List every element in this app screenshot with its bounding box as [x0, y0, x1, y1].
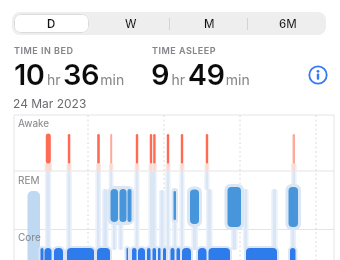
button[interactable]: W [91, 12, 170, 35]
staticText: TIME ASLEEP [152, 45, 217, 56]
button[interactable]: M [170, 12, 249, 35]
button[interactable]: 6M [249, 12, 326, 35]
staticText: 6M [279, 17, 297, 31]
button[interactable]: D [12, 12, 91, 35]
staticText: D [47, 17, 56, 31]
staticText: 24 Mar 2023 [13, 96, 87, 111]
staticText: Core [18, 231, 41, 243]
staticText: M [204, 17, 215, 31]
staticText: Awake [18, 117, 50, 129]
staticText: 10 hr 36 min [14, 57, 125, 92]
staticText: REM [18, 174, 40, 186]
button[interactable] [308, 65, 328, 85]
staticText: W [125, 17, 137, 31]
staticText: 9 hr 49 min [151, 57, 250, 92]
staticText: TIME IN BED [14, 45, 74, 56]
